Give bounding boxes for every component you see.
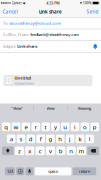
- staticText: Untitled: [14, 75, 31, 81]
- staticText: w: [14, 123, 19, 131]
- staticText: m: [79, 147, 85, 155]
- button[interactable]: j: [66, 134, 74, 143]
- staticText: q: [4, 123, 8, 131]
- button[interactable]: a: [7, 134, 15, 143]
- staticText: v: [49, 147, 52, 155]
- button[interactable]: z: [15, 146, 24, 155]
- staticText: Cc/Bcc, From:: [3, 32, 29, 37]
- button[interactable]: r: [31, 122, 40, 131]
- staticText: 100%: [83, 1, 92, 5]
- button[interactable]: To:: [0, 18, 101, 29]
- button[interactable]: t: [41, 122, 50, 131]
- staticText: d: [29, 135, 33, 143]
- button[interactable]: v: [46, 146, 55, 155]
- staticText: Link share: [17, 44, 37, 49]
- button[interactable]: Notify me: [92, 43, 98, 49]
- button[interactable]: o: [81, 122, 89, 131]
- button[interactable]: space: [35, 167, 71, 175]
- button[interactable]: Send: [84, 6, 101, 17]
- staticText: e: [24, 123, 27, 131]
- staticText: c: [39, 147, 42, 155]
- button[interactable]: 123: [5, 167, 15, 175]
- staticText: Send: [86, 9, 98, 15]
- staticText: 4:33 PM: [46, 0, 59, 6]
- button[interactable]: q: [2, 122, 10, 131]
- staticText: n: [69, 147, 73, 155]
- staticText: iCloud Drive: [14, 81, 34, 86]
- button[interactable]: g: [46, 134, 55, 143]
- button[interactable]: f: [36, 134, 45, 143]
- staticText: p: [93, 123, 97, 131]
- button[interactable]: b: [56, 146, 65, 155]
- staticText: r: [35, 123, 37, 131]
- staticText: z: [18, 147, 21, 155]
- button[interactable]: k: [76, 134, 84, 143]
- button[interactable]: i: [71, 122, 79, 131]
- button[interactable]: [25, 167, 33, 175]
- button[interactable]: “View”: [0, 103, 33, 113]
- staticText: Link share: [39, 9, 62, 15]
- staticText: y: [54, 123, 57, 131]
- button[interactable]: n: [67, 146, 76, 155]
- staticText: u: [63, 123, 67, 131]
- button[interactable]: u: [61, 122, 69, 131]
- staticText: x: [28, 147, 31, 155]
- staticText: 123: [7, 169, 13, 174]
- button[interactable]: l: [85, 134, 94, 143]
- staticText: “View”: [11, 105, 22, 111]
- staticText: To:: [3, 20, 8, 26]
- staticText: h: [58, 135, 62, 143]
- button[interactable]: d: [26, 134, 35, 143]
- button[interactable]: Untitled: [3, 75, 92, 86]
- button[interactable]: s: [17, 134, 25, 143]
- button[interactable]: [87, 146, 99, 155]
- staticText: j: [69, 135, 71, 143]
- staticText: return: [79, 169, 90, 174]
- staticText: b: [59, 147, 63, 155]
- button[interactable]: [16, 167, 24, 175]
- button[interactable]: Viewing: [68, 103, 101, 113]
- staticText: o: [83, 123, 87, 131]
- staticText: f: [40, 135, 42, 143]
- button[interactable]: h: [56, 134, 64, 143]
- staticText: feedback@ebookfrenzy.com: [30, 32, 79, 37]
- staticText: ebookfrenzy@icloud.com: [9, 20, 61, 26]
- button[interactable]: [2, 146, 14, 155]
- staticText: a: [10, 135, 13, 143]
- staticText: Carrier: [11, 1, 21, 5]
- staticText: i: [74, 123, 76, 131]
- staticText: space: [48, 169, 58, 174]
- button[interactable]: x: [25, 146, 34, 155]
- staticText: l: [89, 135, 91, 143]
- button[interactable]: Cancel: [0, 6, 20, 17]
- button[interactable]: w: [12, 122, 20, 131]
- button[interactable]: return: [73, 167, 96, 175]
- button[interactable]: y: [51, 122, 60, 131]
- button[interactable]: Cc/Bcc, From:: [0, 29, 101, 40]
- staticText: s: [19, 135, 22, 143]
- button[interactable]: p: [90, 122, 99, 131]
- staticText: Subject:: [3, 44, 16, 49]
- staticText: t: [45, 123, 47, 131]
- staticText: g: [48, 135, 52, 143]
- staticText: View: [46, 105, 54, 111]
- button[interactable]: e: [22, 122, 30, 131]
- staticText: k: [78, 135, 81, 143]
- staticText: Viewing: [78, 105, 91, 111]
- button[interactable]: View: [34, 103, 67, 113]
- button[interactable]: m: [77, 146, 86, 155]
- button[interactable]: c: [36, 146, 45, 155]
- staticText: Cancel: [2, 9, 17, 15]
